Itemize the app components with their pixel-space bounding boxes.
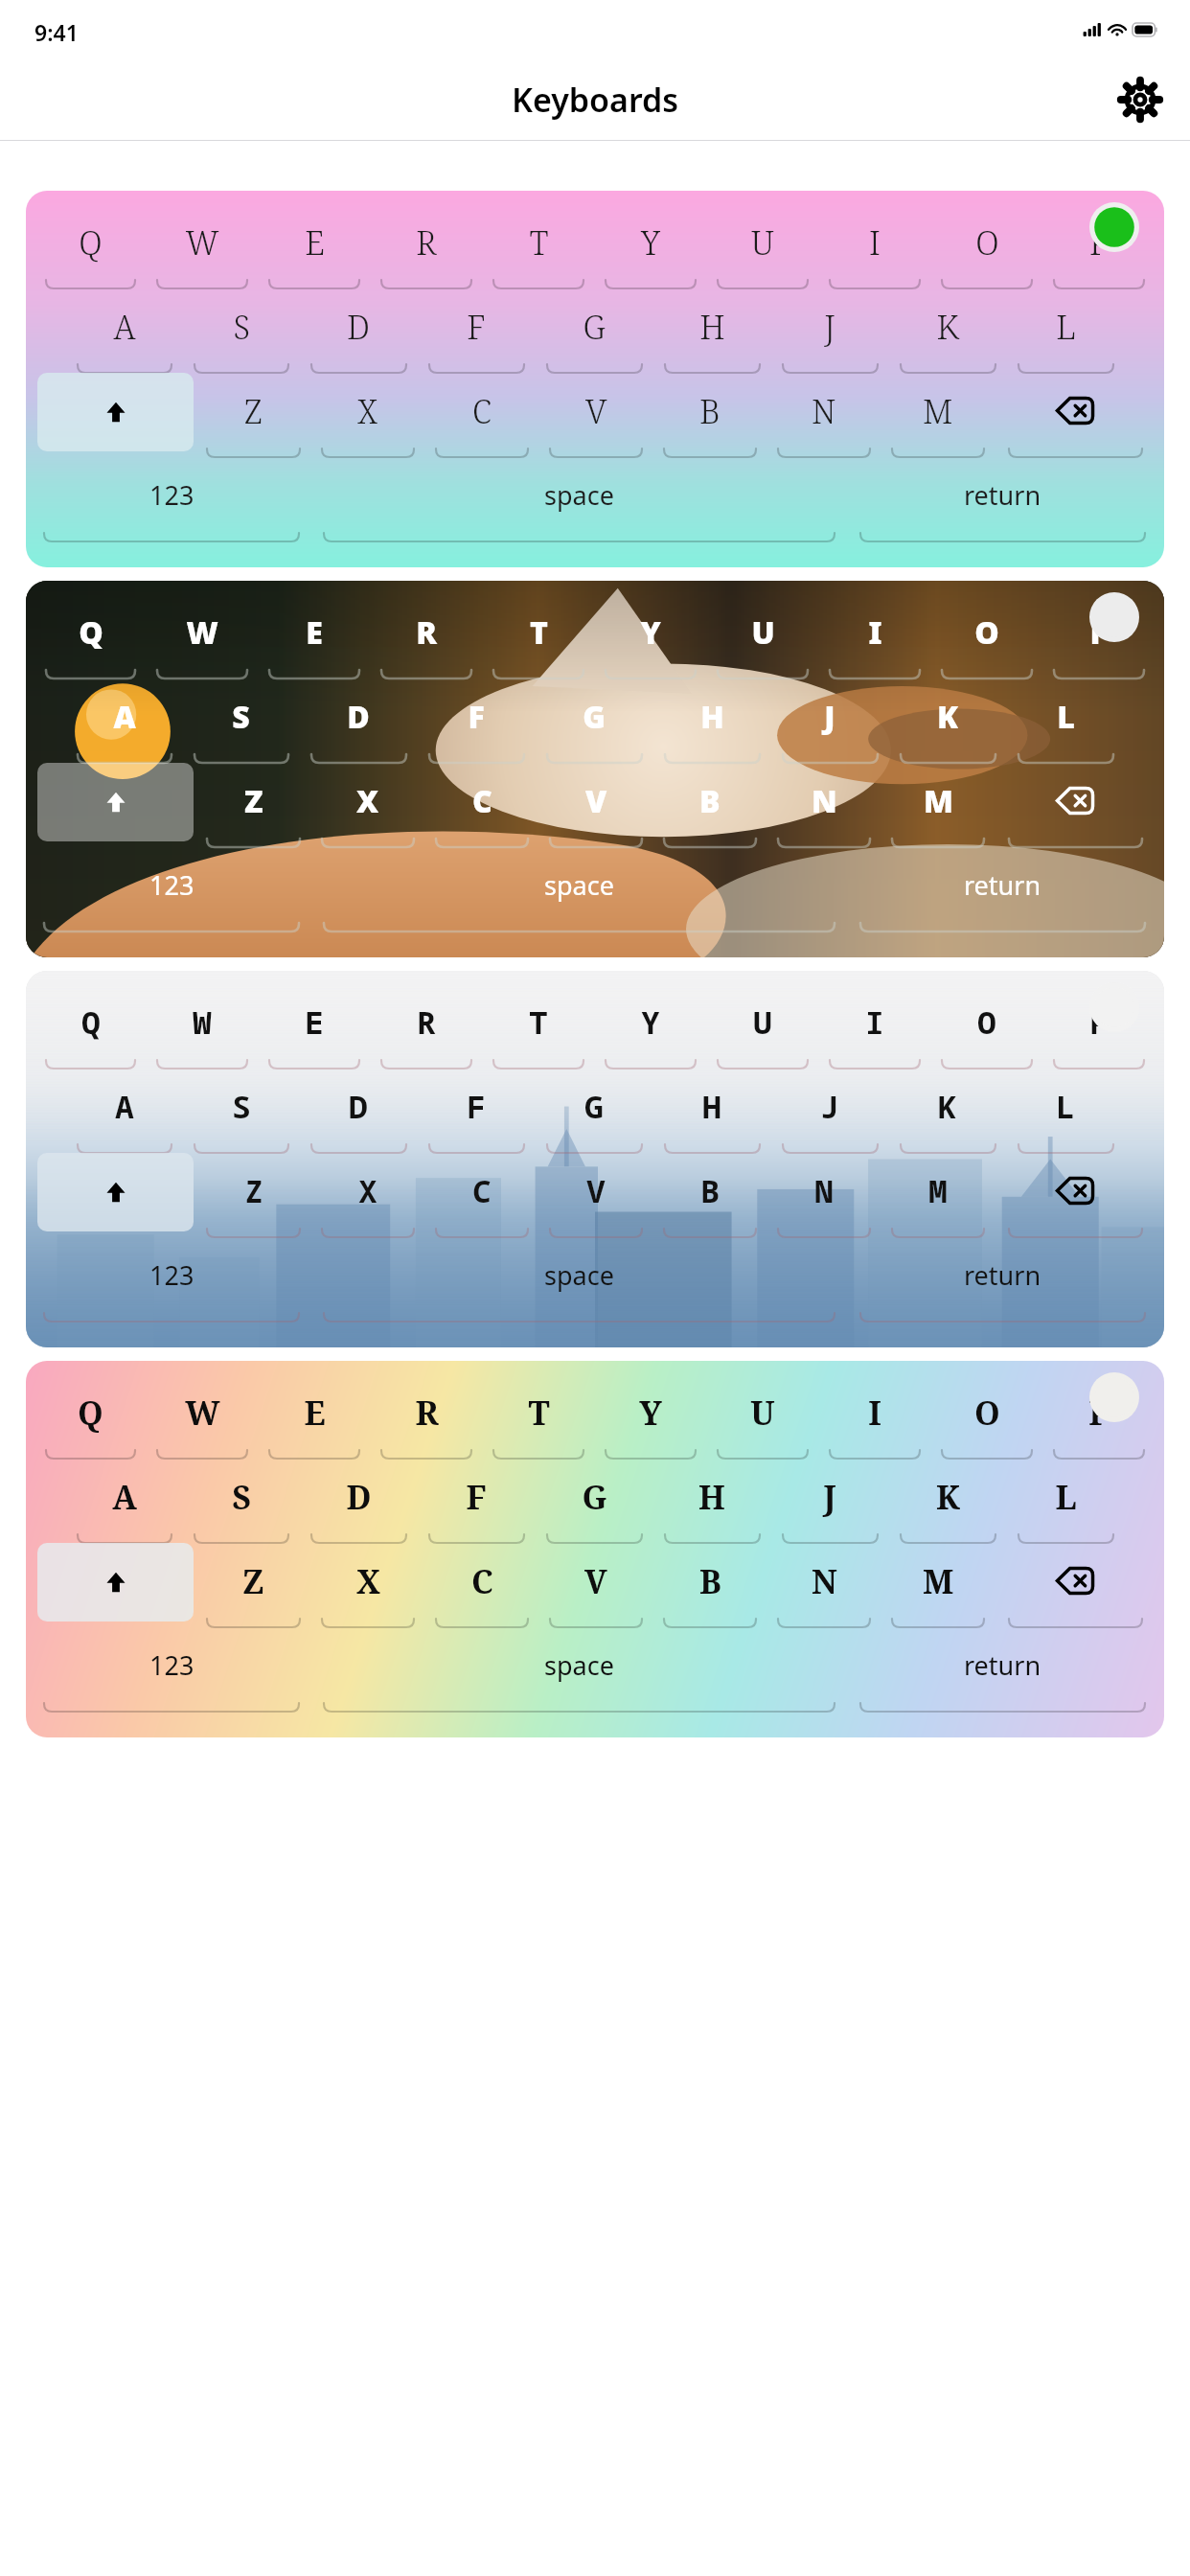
- button[interactable]: I: [821, 594, 928, 678]
- button[interactable]: J: [773, 1459, 886, 1543]
- button[interactable]: Shift: [37, 763, 194, 841]
- button[interactable]: S: [185, 1459, 297, 1543]
- button[interactable]: U: [709, 594, 816, 678]
- button[interactable]: P: [1045, 1374, 1153, 1459]
- button[interactable]: F: [420, 1459, 533, 1543]
- button[interactable]: N: [769, 1543, 879, 1627]
- button[interactable]: B: [655, 1543, 765, 1627]
- button[interactable]: H: [655, 1069, 768, 1153]
- button[interactable]: B: [655, 373, 765, 457]
- button[interactable]: Q: [26, 581, 1164, 957]
- button[interactable]: Z: [198, 763, 309, 847]
- button[interactable]: F: [420, 678, 533, 763]
- button[interactable]: S: [185, 288, 297, 373]
- button[interactable]: D: [302, 678, 415, 763]
- button[interactable]: E: [261, 204, 368, 288]
- button[interactable]: Backspace: [997, 763, 1153, 847]
- button[interactable]: 123: [37, 457, 306, 541]
- button[interactable]: 123: [37, 1237, 306, 1322]
- button[interactable]: C: [427, 1153, 537, 1237]
- button[interactable]: X: [313, 1543, 423, 1627]
- button[interactable]: Q: [26, 191, 1164, 567]
- button[interactable]: T: [485, 594, 592, 678]
- button[interactable]: W: [149, 204, 256, 288]
- button[interactable]: K: [891, 678, 1004, 763]
- button[interactable]: space: [310, 847, 848, 931]
- button[interactable]: Backspace: [997, 1543, 1153, 1627]
- button[interactable]: J: [773, 678, 886, 763]
- button[interactable]: Q: [37, 1374, 144, 1459]
- button[interactable]: V: [541, 763, 651, 847]
- button[interactable]: B: [655, 1153, 765, 1237]
- button[interactable]: 123: [37, 1627, 306, 1712]
- button[interactable]: L: [1009, 678, 1122, 763]
- button[interactable]: F: [420, 1069, 533, 1153]
- button[interactable]: D: [302, 288, 415, 373]
- button[interactable]: H: [655, 288, 768, 373]
- button[interactable]: G: [538, 1459, 651, 1543]
- button[interactable]: W: [149, 1374, 256, 1459]
- button[interactable]: N: [769, 1153, 879, 1237]
- button[interactable]: X: [313, 1153, 423, 1237]
- button[interactable]: G: [538, 1069, 651, 1153]
- button[interactable]: P: [1045, 204, 1153, 288]
- button[interactable]: F: [420, 288, 533, 373]
- button[interactable]: Q: [37, 204, 144, 288]
- button[interactable]: C: [427, 1543, 537, 1627]
- button[interactable]: G: [538, 678, 651, 763]
- button[interactable]: J: [773, 1069, 886, 1153]
- button[interactable]: O: [933, 1374, 1041, 1459]
- button[interactable]: R: [373, 1374, 480, 1459]
- button[interactable]: K: [891, 288, 1004, 373]
- button[interactable]: Y: [597, 204, 704, 288]
- button[interactable]: K: [891, 1069, 1004, 1153]
- button[interactable]: H: [655, 1459, 768, 1543]
- button[interactable]: space: [310, 1627, 848, 1712]
- button[interactable]: D: [302, 1069, 415, 1153]
- button[interactable]: R: [373, 984, 480, 1069]
- button[interactable]: I: [821, 984, 928, 1069]
- button[interactable]: O: [933, 594, 1041, 678]
- button[interactable]: Shift: [37, 1543, 194, 1621]
- button[interactable]: A: [68, 288, 180, 373]
- button[interactable]: M: [883, 1543, 993, 1627]
- button[interactable]: A: [68, 678, 180, 763]
- button[interactable]: Y: [597, 1374, 704, 1459]
- button[interactable]: K: [891, 1459, 1004, 1543]
- button[interactable]: Q: [37, 594, 144, 678]
- button[interactable]: X: [313, 373, 423, 457]
- button[interactable]: D: [302, 1459, 415, 1543]
- button[interactable]: T: [485, 204, 592, 288]
- button[interactable]: Z: [198, 1543, 309, 1627]
- button[interactable]: X: [313, 763, 423, 847]
- button[interactable]: Backspace: [997, 1153, 1153, 1237]
- button[interactable]: L: [1009, 288, 1122, 373]
- button[interactable]: return: [853, 1237, 1153, 1322]
- button[interactable]: G: [538, 288, 651, 373]
- button[interactable]: Z: [198, 373, 309, 457]
- button[interactable]: T: [485, 1374, 592, 1459]
- button[interactable]: A: [68, 1069, 180, 1153]
- button[interactable]: N: [769, 763, 879, 847]
- button[interactable]: M: [883, 373, 993, 457]
- button[interactable]: S: [185, 678, 297, 763]
- button[interactable]: W: [149, 984, 256, 1069]
- button[interactable]: A: [68, 1459, 180, 1543]
- button[interactable]: M: [883, 763, 993, 847]
- button[interactable]: P: [1045, 594, 1153, 678]
- button[interactable]: V: [541, 373, 651, 457]
- button[interactable]: R: [373, 594, 480, 678]
- button[interactable]: B: [655, 763, 765, 847]
- button[interactable]: I: [821, 204, 928, 288]
- button[interactable]: S: [185, 1069, 297, 1153]
- button[interactable]: Q: [26, 971, 1164, 1347]
- button[interactable]: O: [933, 204, 1041, 288]
- button[interactable]: J: [773, 288, 886, 373]
- button[interactable]: Shift: [37, 373, 194, 451]
- button[interactable]: N: [769, 373, 879, 457]
- button[interactable]: E: [261, 1374, 368, 1459]
- button[interactable]: C: [427, 373, 537, 457]
- button[interactable]: space: [310, 457, 848, 541]
- button[interactable]: Q: [37, 984, 144, 1069]
- button[interactable]: V: [541, 1543, 651, 1627]
